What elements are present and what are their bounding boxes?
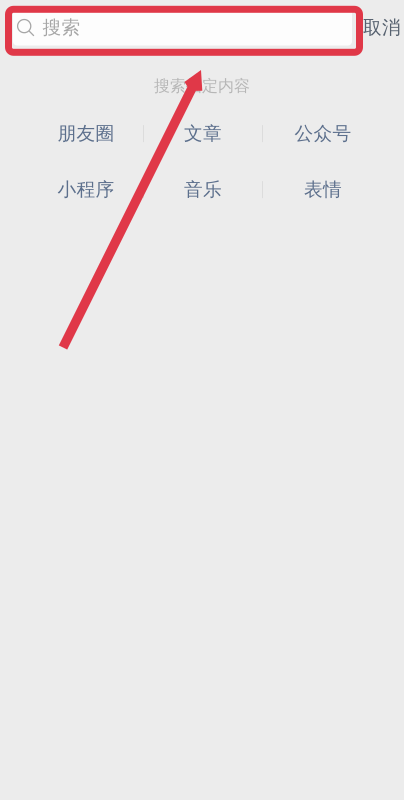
staticText: 小程序: [57, 178, 114, 201]
staticText: 搜索: [42, 16, 80, 39]
staticText: 公众号: [294, 122, 351, 145]
staticText: 朋友圈: [57, 122, 114, 145]
button[interactable]: 搜索: [13, 9, 352, 45]
button[interactable]: 公众号: [263, 124, 383, 144]
staticText: 音乐: [184, 178, 222, 201]
staticText: 表情: [304, 178, 342, 201]
staticText: 搜索指定内容: [154, 76, 250, 96]
button[interactable]: 表情: [263, 180, 383, 200]
button[interactable]: 音乐: [144, 180, 262, 200]
button[interactable]: 取消: [352, 5, 404, 49]
staticText: 取消: [363, 16, 401, 39]
button[interactable]: 朋友圈: [29, 124, 143, 144]
staticText: 文章: [184, 122, 222, 145]
button[interactable]: 文章: [144, 124, 262, 144]
button[interactable]: 小程序: [29, 180, 143, 200]
